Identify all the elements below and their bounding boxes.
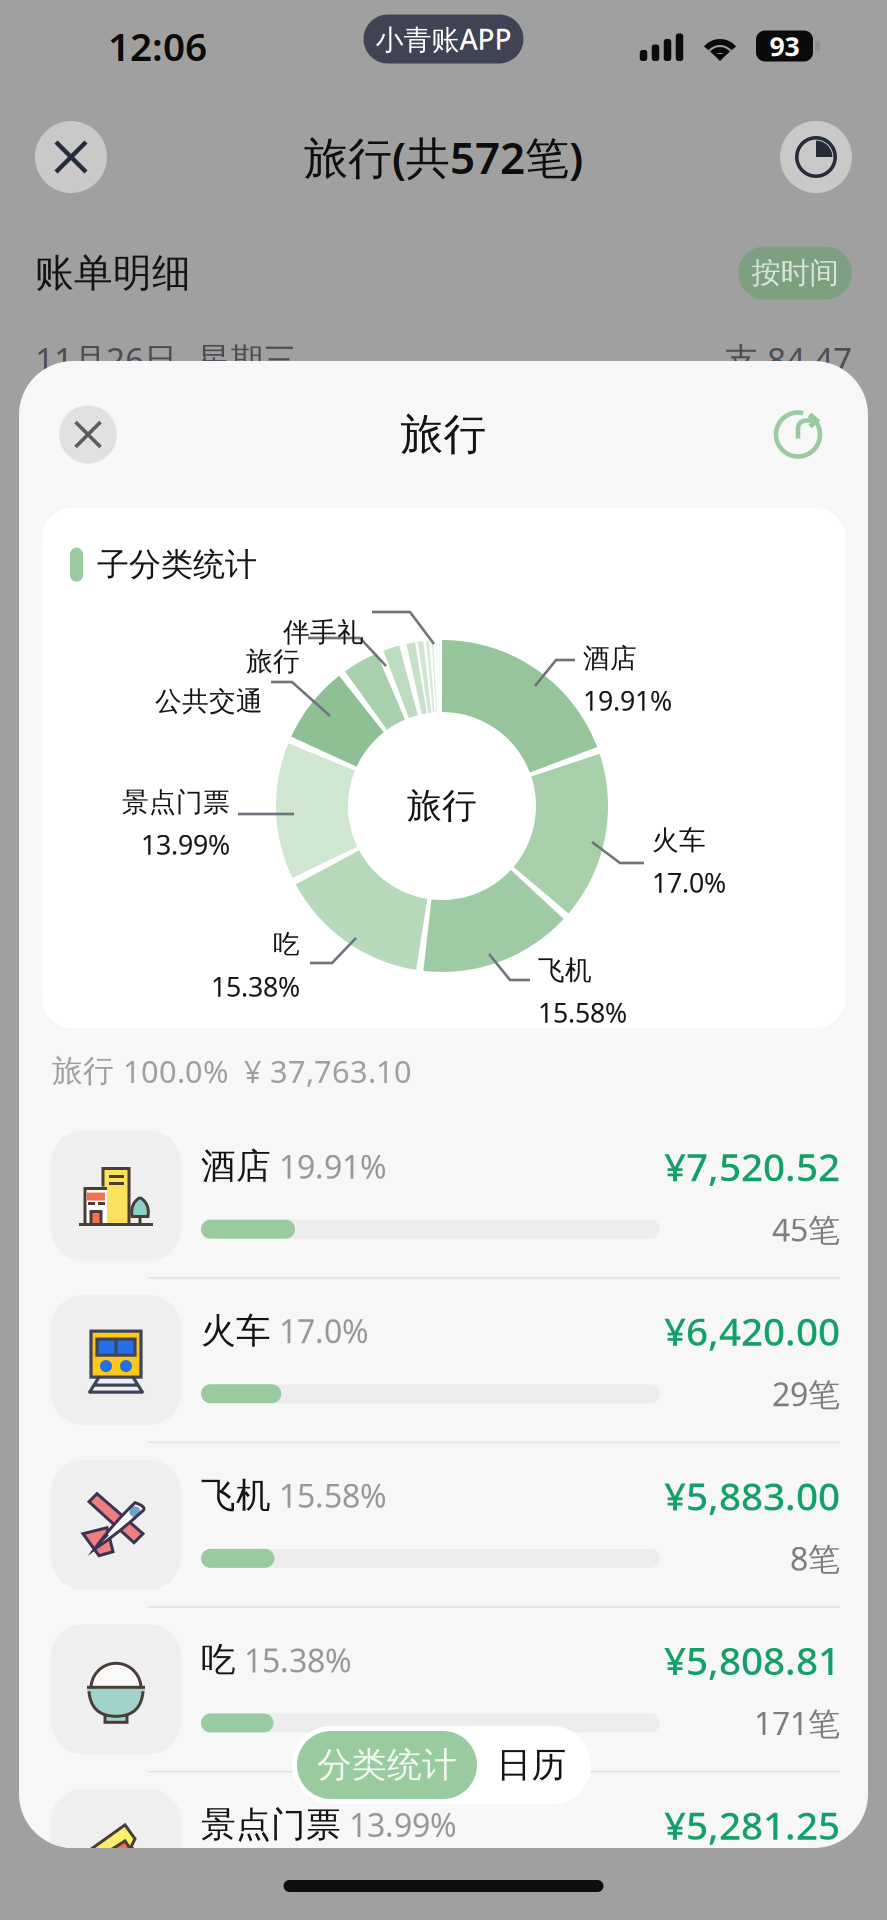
- staticText: ¥7,520.52: [664, 1141, 840, 1192]
- staticText: 景点门票: [201, 1803, 341, 1846]
- staticText: 171笔: [754, 1702, 840, 1744]
- staticText: 旅行: [400, 408, 486, 461]
- staticText: 100.0%: [123, 1051, 244, 1091]
- button[interactable]: 酒店: [19, 1114, 868, 1277]
- staticText: 景点门票: [122, 786, 230, 819]
- staticText: 19.91%: [583, 683, 672, 718]
- staticText: 酒店: [583, 642, 637, 675]
- button[interactable]: 吃: [19, 1608, 868, 1771]
- staticText: 公共交通: [155, 685, 263, 718]
- staticText: 吃: [273, 928, 300, 961]
- staticText: 酒店: [201, 1145, 271, 1188]
- button[interactable]: 飞机: [19, 1443, 868, 1606]
- staticText: 伴手礼: [283, 616, 364, 649]
- staticText: 飞机: [201, 1474, 271, 1517]
- staticText: 火车: [652, 824, 706, 857]
- staticText: 旅行: [246, 645, 300, 678]
- staticText: 15.58%: [538, 995, 627, 1030]
- staticText: 吃: [201, 1639, 236, 1681]
- button[interactable]: 分类统计: [297, 1731, 477, 1799]
- staticText: 日历: [496, 1744, 566, 1786]
- staticText: 飞机: [538, 954, 592, 987]
- staticText: 15.38%: [236, 1639, 352, 1681]
- staticText: 旅行: [52, 1052, 123, 1090]
- staticText: ¥6,420.00: [664, 1305, 840, 1356]
- staticText: 15.58%: [271, 1474, 387, 1517]
- staticText: 29笔: [772, 1372, 840, 1415]
- staticText: 15.38%: [211, 969, 300, 1004]
- staticText: ¥5,281.25: [664, 1799, 840, 1850]
- staticText: 账单明细: [35, 249, 191, 297]
- staticText: 17.0%: [271, 1310, 369, 1352]
- staticText: 45笔: [772, 1208, 840, 1250]
- staticText: 小青账APP: [375, 20, 511, 58]
- staticText: 13.99%: [341, 1803, 457, 1846]
- staticText: 8笔: [790, 1537, 840, 1580]
- staticText: 分类统计: [317, 1744, 457, 1786]
- button[interactable]: 关闭: [51, 397, 125, 471]
- button[interactable]: 火车: [19, 1279, 868, 1442]
- staticText: 11月26日 星期三: [35, 337, 296, 381]
- staticText: 支 84.47: [725, 337, 852, 381]
- staticText: 旅行: [407, 785, 477, 827]
- staticText: 子分类统计: [97, 545, 257, 584]
- staticText: ¥ 37,763.10: [244, 1051, 412, 1091]
- staticText: ¥5,808.81: [664, 1634, 840, 1686]
- button[interactable]: 景点门票: [19, 1772, 868, 1920]
- staticText: 12:06: [108, 20, 207, 72]
- button[interactable]: 分享: [761, 397, 835, 471]
- staticText: 93: [769, 28, 799, 64]
- staticText: 按时间: [751, 255, 838, 291]
- staticText: 17.0%: [652, 865, 726, 900]
- button[interactable]: 日历: [477, 1731, 586, 1799]
- staticText: 旅行(共572笔): [304, 128, 583, 186]
- staticText: 19.91%: [271, 1145, 387, 1187]
- staticText: 火车: [201, 1310, 271, 1352]
- staticText: ¥5,883.00: [664, 1470, 840, 1521]
- staticText: 13.99%: [141, 827, 230, 862]
